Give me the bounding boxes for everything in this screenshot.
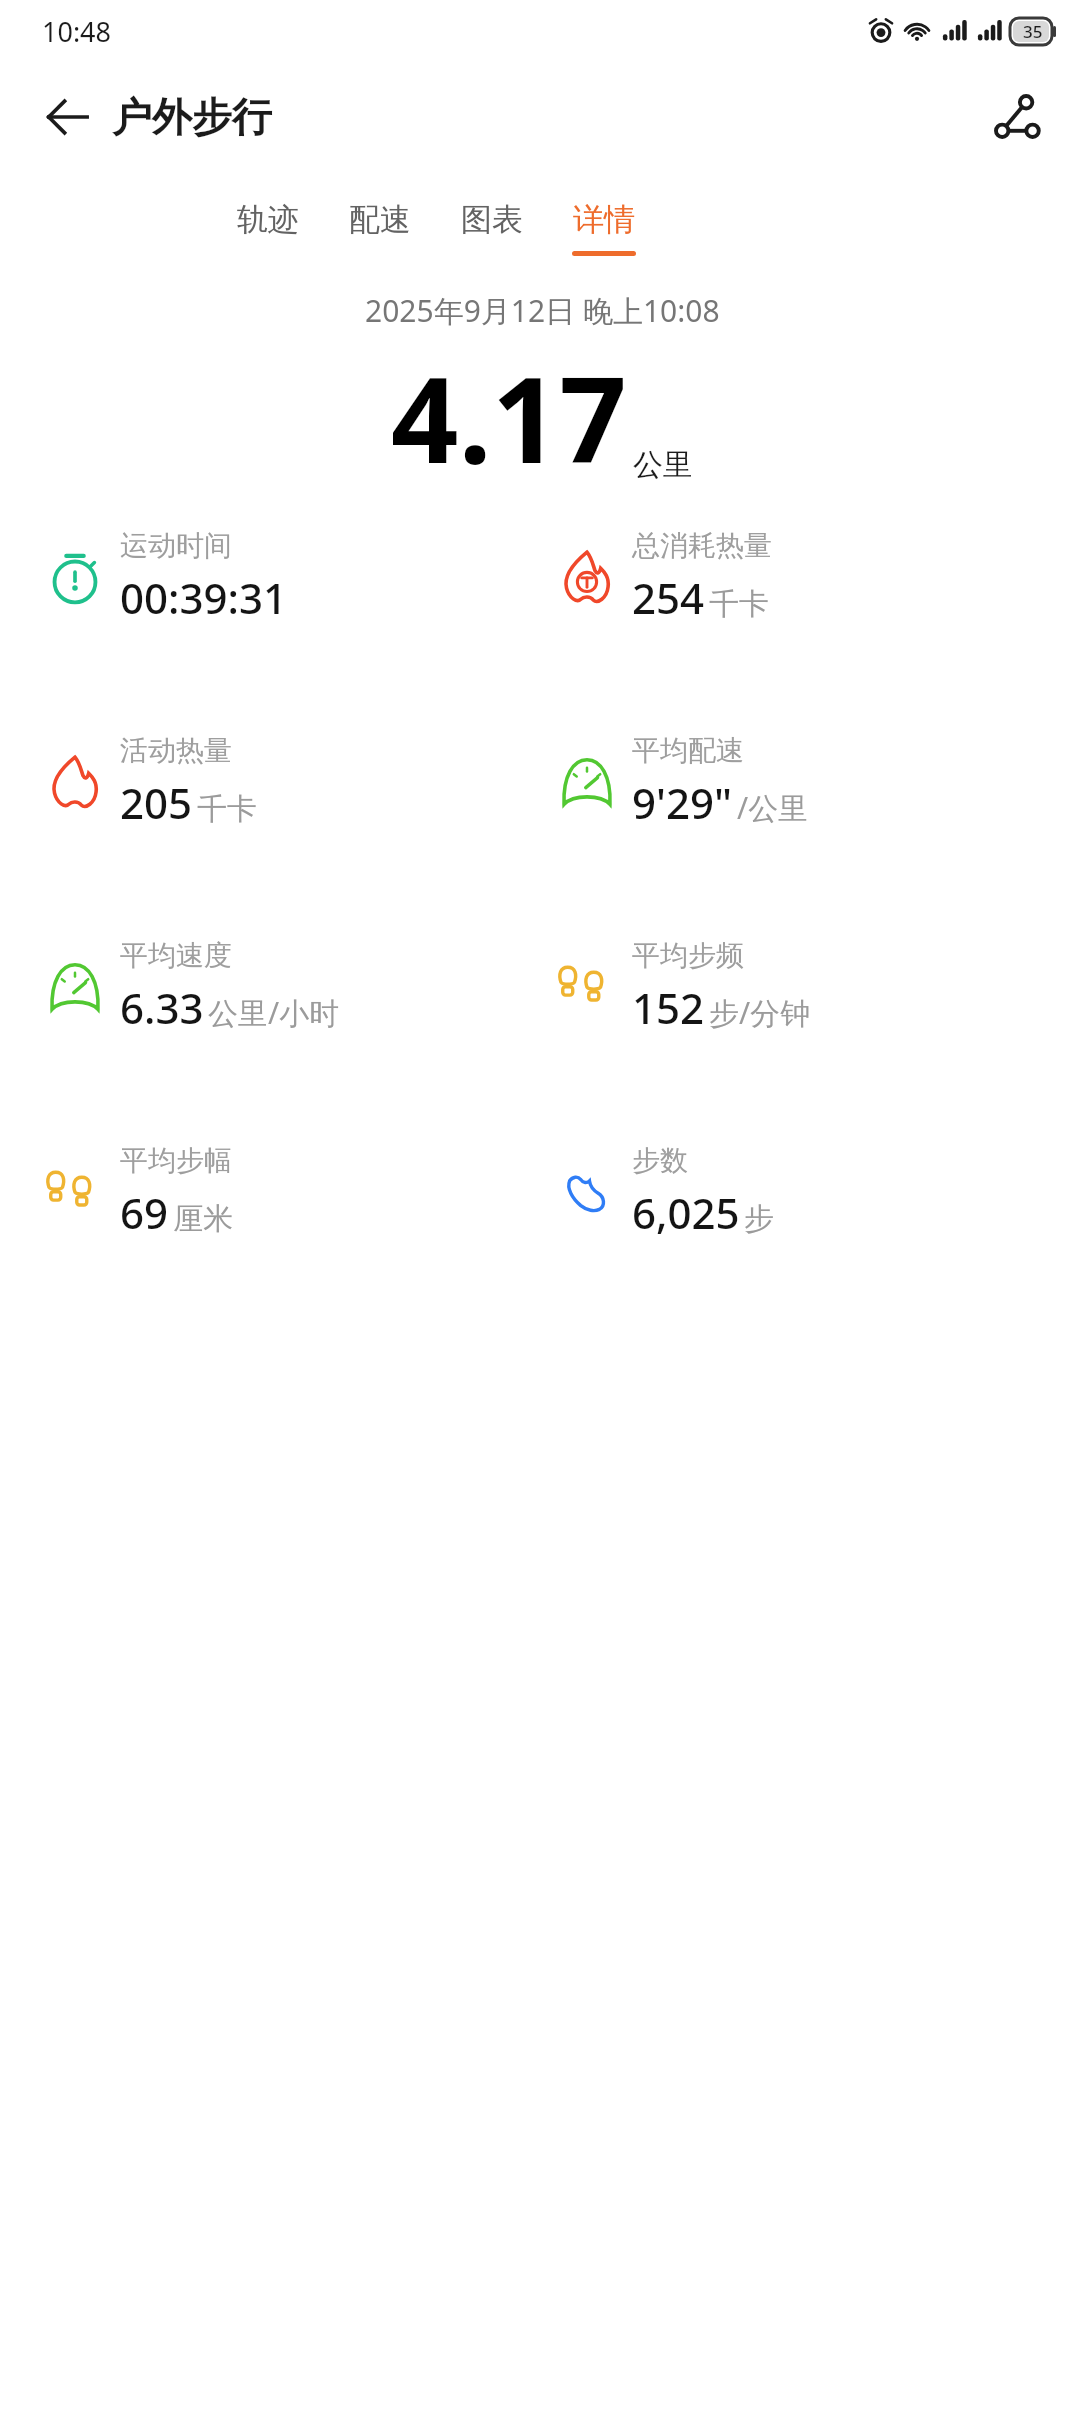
staticText: 平均步幅 [120,1143,232,1178]
staticText: 公里 [633,446,693,484]
button[interactable]: 配速 [342,196,418,260]
staticText: 千卡 [197,790,257,828]
staticText: 户外步行 [112,92,272,142]
button[interactable]: Share [984,85,1048,149]
button[interactable]: 平均配速 [556,733,1084,831]
staticText: 公里/小时 [208,992,340,1033]
staticText: 平均步频 [632,938,744,973]
staticText: 厘米 [173,1200,233,1238]
staticText: 步 [744,1200,774,1238]
staticText: /公里 [737,787,809,828]
button[interactable]: 轨迹 [230,196,306,260]
staticText: 2025年9月12日 晚上10:08 [365,290,720,331]
staticText: 6,025 [632,1184,740,1241]
staticText: 00:39:31 [120,569,287,626]
button[interactable]: 详情 [566,196,642,260]
staticText: 9'29" [632,774,733,831]
staticText: 69 [120,1184,169,1241]
button[interactable]: 总消耗热量 [556,528,1084,626]
staticText: 详情 [573,200,635,239]
button[interactable]: 运动时间 [44,528,542,626]
staticText: 平均速度 [120,938,232,973]
staticText: 10:48 [42,13,112,50]
staticText: 152 [632,979,705,1036]
staticText: 配速 [349,200,411,239]
button[interactable]: 图表 [454,196,530,260]
staticText: 步数 [632,1143,688,1178]
staticText: 35 [1023,20,1043,43]
staticText: 254 [632,569,705,626]
staticText: 总消耗热量 [632,528,772,563]
staticText: 运动时间 [120,528,232,563]
staticText: 平均配速 [632,733,744,768]
staticText: 轨迹 [237,200,299,239]
staticText: 千卡 [709,585,769,623]
staticText: 205 [120,774,193,831]
button[interactable]: 平均步频 [556,938,1084,1036]
button[interactable]: Back [36,86,98,148]
button[interactable]: 活动热量 [44,733,542,831]
staticText: 4.17 [391,337,627,498]
staticText: 图表 [461,200,523,239]
staticText: 步/分钟 [709,992,811,1033]
staticText: 6.33 [120,979,204,1036]
button[interactable]: 平均步幅 [44,1143,542,1241]
staticText: 活动热量 [120,733,232,768]
button[interactable]: 平均速度 [44,938,542,1036]
button[interactable]: 步数 [556,1143,1084,1241]
